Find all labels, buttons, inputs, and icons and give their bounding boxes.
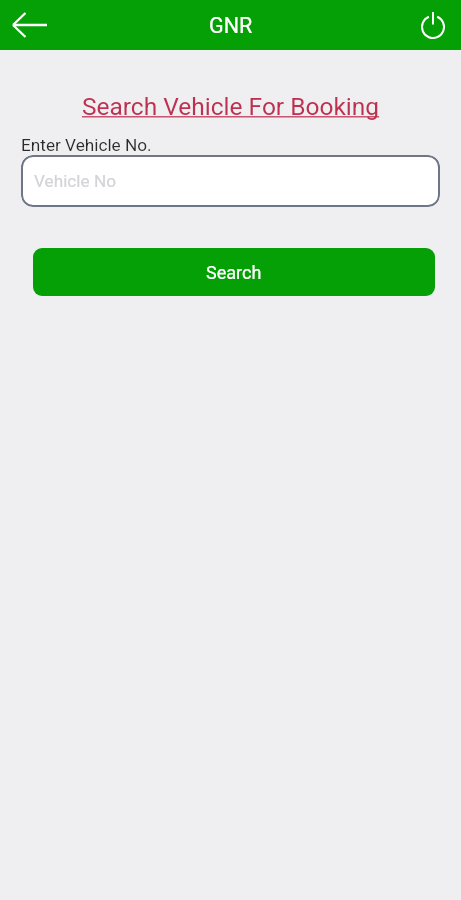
button[interactable]: Logout — [411, 3, 455, 47]
button[interactable]: Search — [33, 248, 435, 296]
button[interactable]: Vehicle No — [21, 155, 440, 207]
staticText: Search — [206, 262, 262, 283]
staticText: Vehicle No — [34, 171, 116, 191]
staticText: Search Vehicle For Booking — [0, 92, 461, 121]
staticText: Enter Vehicle No. — [21, 135, 152, 155]
staticText: GNR — [209, 13, 253, 38]
button[interactable]: Back — [6, 1, 54, 49]
